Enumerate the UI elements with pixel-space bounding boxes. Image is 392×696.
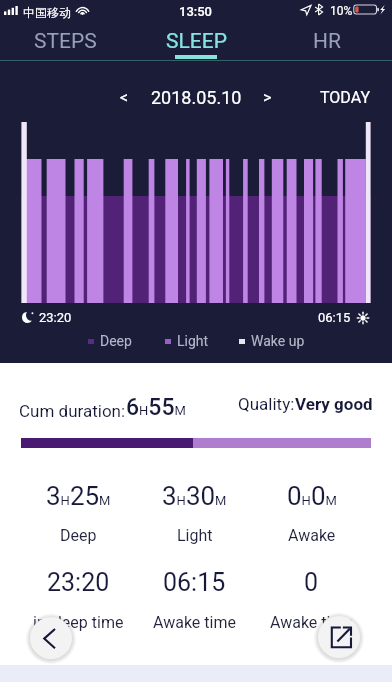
staticText: Deep — [60, 526, 97, 545]
staticText: HR — [313, 29, 341, 54]
staticText: Deep — [100, 333, 132, 349]
button[interactable]: Deep — [88, 331, 132, 351]
staticText: STEPS — [34, 29, 97, 54]
button[interactable]: STEPS — [0, 27, 130, 55]
staticText: < — [120, 88, 129, 107]
staticText: 06:15 — [318, 310, 351, 325]
button[interactable]: HR — [262, 27, 392, 55]
staticText: Awake time — [153, 613, 236, 632]
button[interactable]: Back — [30, 617, 72, 659]
staticText: Cum duration: — [19, 401, 126, 421]
staticText: 中国移动 — [23, 5, 71, 20]
staticText: 06:15 — [163, 568, 226, 597]
button[interactable]: Light — [165, 331, 209, 351]
staticText: Awake time — [270, 613, 353, 632]
button[interactable]: SLEEP — [131, 27, 261, 55]
staticText: 6H55M — [126, 394, 186, 421]
staticText: in sleep time — [33, 613, 124, 632]
staticText: Light — [177, 333, 209, 349]
staticText: > — [263, 88, 272, 107]
staticText: Light — [177, 526, 213, 545]
staticText: 13:50 — [179, 4, 212, 19]
staticText: Very good — [295, 394, 373, 414]
staticText: Quality: — [238, 394, 295, 414]
button[interactable]: Share — [318, 616, 360, 658]
button[interactable]: Wake up — [239, 331, 305, 351]
staticText: Wake up — [251, 333, 305, 349]
staticText: 10% — [330, 4, 353, 18]
button[interactable]: Next day — [254, 85, 280, 110]
staticText: 3H25M — [46, 481, 111, 511]
button[interactable]: TODAY — [312, 85, 378, 110]
staticText: 23:20 — [39, 310, 72, 325]
staticText: 23:20 — [47, 568, 110, 597]
staticText: 2018.05.10 — [151, 87, 242, 108]
button[interactable]: Previous day — [111, 85, 137, 110]
staticText: TODAY — [320, 88, 370, 107]
staticText: SLEEP — [166, 29, 227, 54]
staticText: Awake — [288, 526, 336, 545]
staticText: 0H0M — [287, 481, 337, 511]
staticText: 0 — [304, 568, 319, 597]
staticText: 3H30M — [162, 481, 227, 511]
